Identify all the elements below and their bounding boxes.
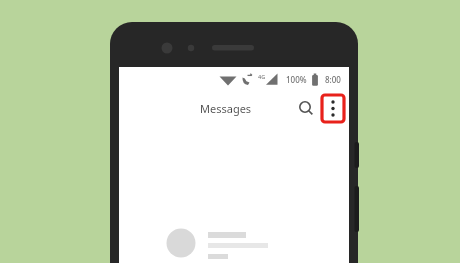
button[interactable]: Search	[296, 98, 314, 116]
button[interactable]: Conversation	[119, 222, 349, 263]
button[interactable]: More options	[322, 95, 344, 122]
